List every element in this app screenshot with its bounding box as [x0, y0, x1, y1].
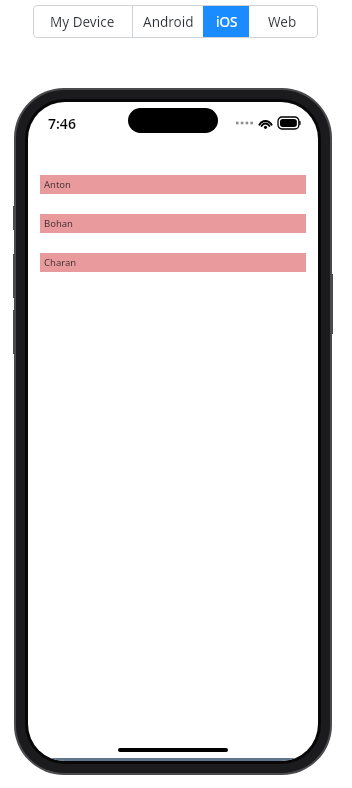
button[interactable]: iOS: [204, 5, 249, 38]
button[interactable]: Bohan: [40, 214, 306, 233]
staticText: Android: [143, 13, 194, 31]
staticText: My Device: [50, 13, 115, 31]
button[interactable]: My Device: [33, 5, 132, 38]
other: Cellular signal: [236, 118, 253, 128]
staticText: 7:46: [48, 114, 76, 133]
button[interactable]: Android: [133, 5, 203, 38]
staticText: Web: [268, 13, 297, 31]
other: Battery: [278, 117, 302, 129]
button[interactable]: Web: [249, 5, 316, 38]
button[interactable]: Charan: [40, 253, 306, 272]
staticText: iOS: [216, 13, 238, 31]
button[interactable]: Anton: [40, 175, 306, 194]
staticText: Charan: [44, 256, 77, 269]
staticText: Bohan: [44, 217, 73, 230]
other: Wi-Fi: [258, 118, 273, 129]
staticText: Anton: [44, 178, 71, 191]
